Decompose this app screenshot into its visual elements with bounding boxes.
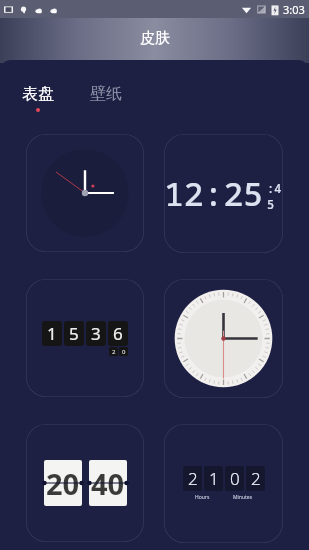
staticText: 6 [113, 322, 123, 345]
staticText: 3 [91, 322, 101, 345]
staticText: 20 [46, 464, 80, 503]
staticText: 1 [209, 467, 219, 490]
staticText: 40 [91, 464, 125, 503]
button[interactable]: Watch face [164, 424, 283, 543]
staticText: 0 [230, 467, 240, 490]
button[interactable]: Watch face [26, 279, 144, 397]
staticText: 1 [47, 322, 57, 345]
button[interactable]: Watch face [26, 134, 144, 252]
staticText: 壁纸 [90, 84, 122, 104]
staticText: 0 [122, 348, 126, 356]
staticText: 12:25 [164, 171, 264, 216]
button[interactable]: Watch face [26, 424, 144, 542]
staticText: :45 [267, 180, 283, 212]
staticText: 2 [188, 467, 198, 490]
button[interactable]: 表盘 [18, 82, 58, 114]
button[interactable]: Watch face [164, 279, 283, 398]
staticText: 皮肤 [140, 29, 170, 48]
staticText: Hours [195, 494, 210, 501]
staticText: 5 [69, 322, 79, 345]
button[interactable]: 壁纸 [86, 82, 126, 106]
staticText: 表盘 [22, 84, 54, 104]
staticText: Minutes [233, 494, 253, 501]
staticText: 2 [112, 348, 116, 356]
staticText: 2 [251, 467, 261, 490]
staticText: 3:03 [283, 2, 305, 17]
button[interactable]: Watch face [164, 134, 283, 253]
